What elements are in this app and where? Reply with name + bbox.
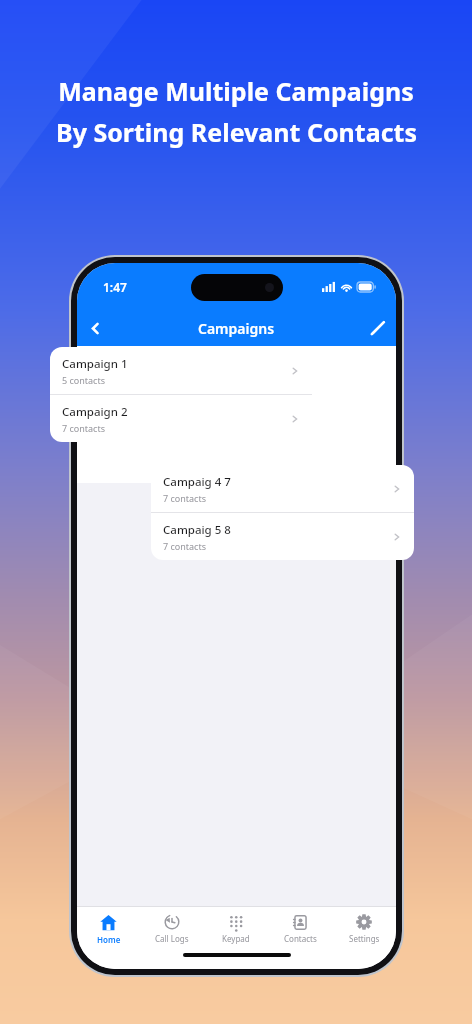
staticText: Settings — [349, 933, 380, 944]
staticText: 7 contacts — [163, 492, 206, 504]
staticText: Campaigns — [198, 319, 275, 338]
button[interactable]: Call Logs — [140, 914, 204, 944]
staticText: Call Logs — [155, 933, 189, 944]
staticText: Campaign 1 — [62, 356, 128, 372]
button[interactable]: Back — [77, 310, 113, 346]
staticText: 7 contacts — [163, 540, 206, 552]
staticText: 5 contacts — [62, 374, 105, 386]
staticText: Campaign 2 — [62, 404, 128, 420]
staticText: Campaig 5 8 — [163, 522, 231, 538]
button[interactable]: Campaig 5 8 — [151, 513, 414, 560]
button[interactable]: Contacts — [268, 915, 332, 944]
button[interactable]: Campaig 4 7 — [151, 465, 414, 512]
staticText: Keypad — [222, 933, 250, 944]
button[interactable]: Campaign 2 — [50, 395, 312, 442]
staticText: Campaig 4 7 — [163, 474, 231, 490]
staticText: Contacts — [284, 933, 317, 944]
button[interactable]: Campaign 1 — [50, 347, 312, 394]
button[interactable]: Home — [77, 914, 140, 945]
staticText: Manage Multiple Campaigns — [58, 74, 414, 108]
button[interactable]: Settings — [332, 914, 396, 944]
staticText: 1:47 — [103, 279, 127, 295]
button[interactable]: Keypad — [204, 915, 268, 944]
staticText: By Sorting Relevant Contacts — [56, 115, 417, 149]
staticText: 7 contacts — [62, 422, 105, 434]
button[interactable]: Edit — [360, 310, 396, 346]
staticText: Home — [97, 934, 121, 945]
